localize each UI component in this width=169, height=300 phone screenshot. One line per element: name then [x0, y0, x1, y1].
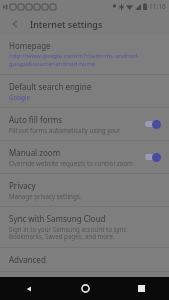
button[interactable]: Default search engine — [0, 75, 169, 107]
staticText: Sync with Samsung Cloud — [9, 213, 106, 224]
staticText: 11:16 — [149, 2, 166, 11]
button[interactable]: Back — [0, 277, 57, 300]
button[interactable]: Homepage — [0, 34, 169, 74]
button[interactable]: Sync with Samsung Cloud — [0, 207, 169, 247]
staticText: Auto fill forms — [9, 114, 63, 125]
staticText: Manage privacy settings. — [9, 192, 82, 200]
button[interactable]: Back — [0, 13, 30, 34]
staticText: Override website requests to control zoo… — [9, 159, 138, 167]
staticText: Manual zoom — [9, 147, 61, 158]
staticText: Google — [9, 93, 30, 101]
staticText: Privacy — [9, 180, 36, 191]
button[interactable]: Manual zoom — [0, 141, 169, 173]
staticText: Advanced — [9, 254, 46, 265]
staticText: Homepage — [9, 40, 51, 51]
button[interactable]: Toggle — [144, 152, 162, 162]
button[interactable]: Recent apps — [113, 277, 169, 300]
button[interactable]: Auto fill forms — [0, 108, 169, 140]
staticText: http://www.google.com/m?client=ms-androi… — [9, 52, 162, 68]
button[interactable]: Advanced — [0, 248, 169, 271]
staticText: Fill out forms automatically using your … — [9, 126, 138, 134]
staticText: Internet settings — [30, 18, 103, 30]
button[interactable]: Privacy — [0, 174, 169, 206]
button[interactable]: Home — [57, 277, 113, 300]
staticText: Sign in to your Samsung account to sync … — [9, 225, 162, 241]
button[interactable]: Toggle — [144, 119, 162, 129]
staticText: Default search engine — [9, 81, 92, 92]
